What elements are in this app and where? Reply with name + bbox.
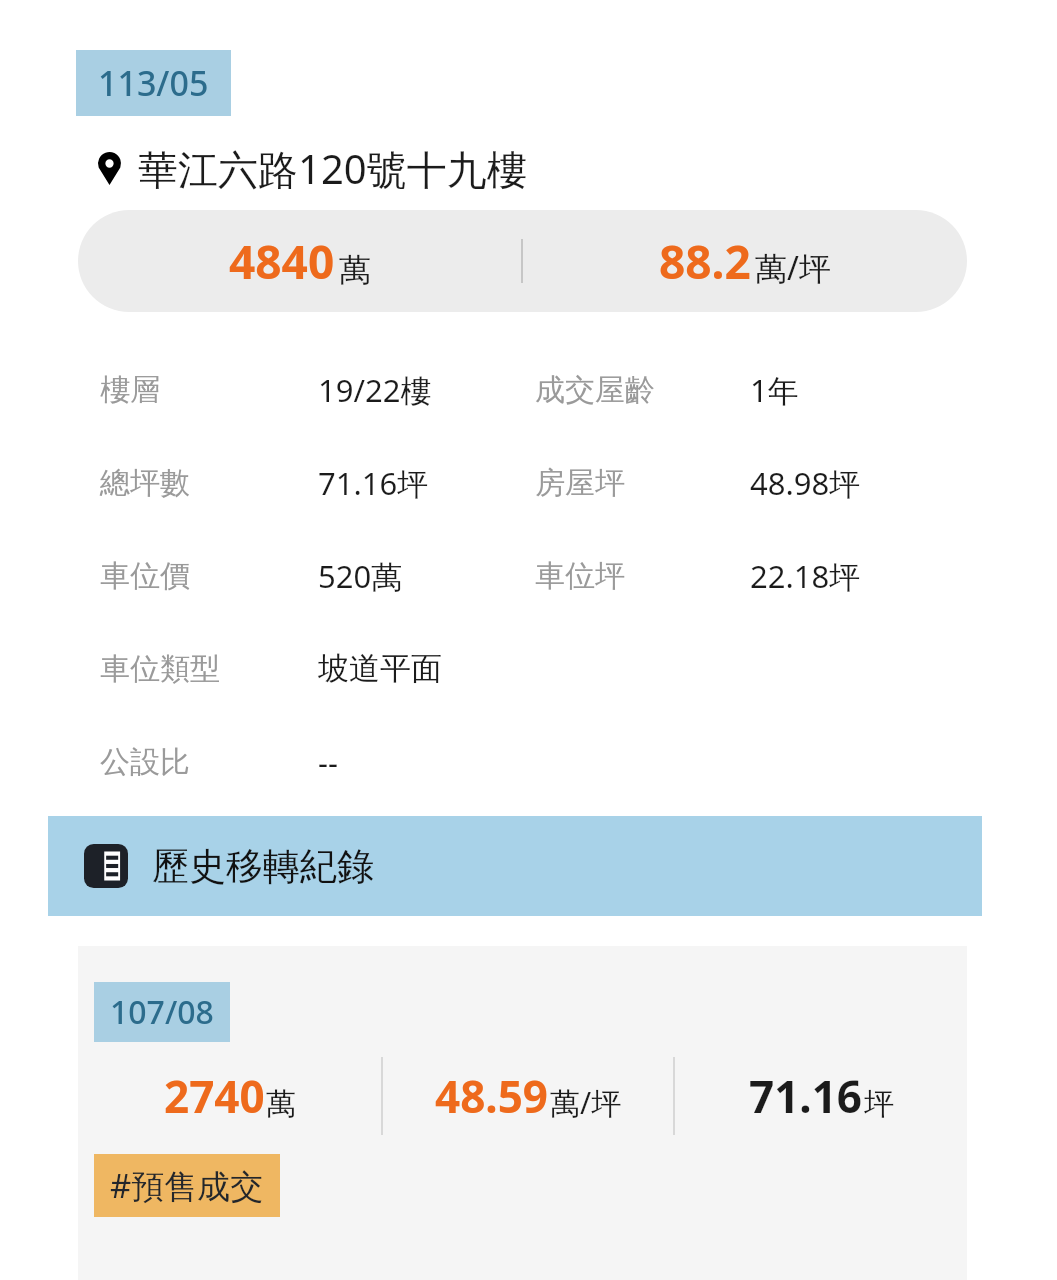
staticText: 1年 bbox=[750, 369, 799, 411]
button[interactable]: 107/08 bbox=[94, 982, 230, 1042]
staticText: 萬 bbox=[266, 1085, 296, 1123]
staticText: 19/22樓 bbox=[318, 369, 432, 411]
button[interactable]: 107/08 bbox=[78, 946, 967, 1280]
staticText: 107/08 bbox=[110, 990, 214, 1034]
button[interactable]: 歷史移轉紀錄 bbox=[48, 816, 982, 916]
staticText: 車位價 bbox=[100, 557, 190, 595]
other: 歷史移轉紀錄 bbox=[84, 844, 128, 888]
staticText: 113/05 bbox=[98, 60, 209, 106]
staticText: -- bbox=[318, 741, 338, 783]
staticText: 坡道平面 bbox=[318, 649, 442, 688]
staticText: 坪 bbox=[864, 1085, 894, 1123]
staticText: 華江六路120號十九樓 bbox=[138, 141, 527, 196]
staticText: #預售成交 bbox=[110, 1163, 264, 1208]
staticText: 48.59 bbox=[435, 1066, 549, 1126]
staticText: 總坪數 bbox=[100, 464, 190, 502]
staticText: 48.98坪 bbox=[750, 462, 861, 504]
staticText: 2740 bbox=[164, 1066, 265, 1126]
button[interactable]: #預售成交 bbox=[94, 1154, 280, 1217]
staticText: 萬 bbox=[339, 250, 371, 290]
staticText: 萬/坪 bbox=[755, 246, 831, 290]
staticText: 萬/坪 bbox=[550, 1082, 622, 1123]
button[interactable]: 113/05 bbox=[76, 50, 231, 116]
staticText: 樓層 bbox=[100, 371, 160, 409]
button[interactable]: 4840 bbox=[78, 210, 967, 312]
staticText: 成交屋齡 bbox=[535, 371, 655, 409]
staticText: 歷史移轉紀錄 bbox=[152, 843, 374, 890]
staticText: 車位類型 bbox=[100, 650, 220, 688]
button[interactable]: 華江六路120號十九樓 bbox=[0, 141, 1057, 196]
staticText: 520萬 bbox=[318, 555, 403, 597]
staticText: 4840 bbox=[229, 230, 335, 293]
staticText: 88.2 bbox=[659, 230, 751, 293]
staticText: 71.16 bbox=[749, 1066, 863, 1126]
staticText: 71.16坪 bbox=[318, 462, 429, 504]
staticText: 公設比 bbox=[100, 743, 190, 781]
staticText: 車位坪 bbox=[535, 557, 625, 595]
staticText: 房屋坪 bbox=[535, 464, 625, 502]
staticText: 22.18坪 bbox=[750, 555, 861, 597]
